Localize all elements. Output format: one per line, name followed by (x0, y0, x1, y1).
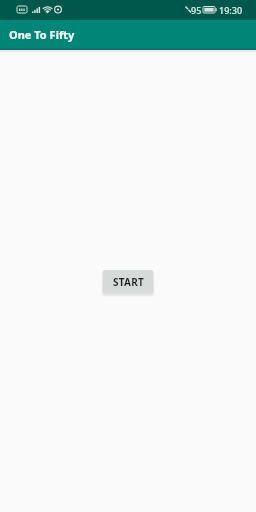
staticText: 19:30 (219, 4, 243, 16)
staticText: One To Fifty (9, 27, 75, 42)
staticText: 95 (191, 4, 202, 16)
staticText: START (113, 275, 144, 289)
button[interactable]: Start (103, 270, 153, 293)
